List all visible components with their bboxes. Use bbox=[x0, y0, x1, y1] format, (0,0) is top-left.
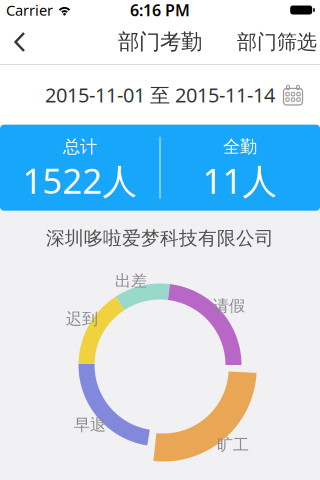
button[interactable]: 部门筛选 bbox=[237, 20, 320, 64]
staticText: 部门筛选 bbox=[237, 30, 317, 54]
staticText: 全勤 bbox=[223, 136, 257, 157]
staticText: 部门考勤 bbox=[118, 29, 202, 55]
staticText: 2015-11-01 至 2015-11-14 bbox=[45, 81, 275, 108]
button[interactable]: Back bbox=[0, 20, 40, 64]
staticText: 早退 bbox=[74, 415, 106, 435]
staticText: 总计 bbox=[63, 136, 97, 157]
staticText: 请假 bbox=[213, 296, 245, 316]
staticText: Carrier bbox=[6, 0, 53, 20]
staticText: 旷工 bbox=[217, 435, 249, 455]
staticText: 6:16 PM bbox=[130, 0, 190, 21]
staticText: 1522人 bbox=[22, 157, 137, 203]
button[interactable]: 2015-11-01 至 2015-11-14 bbox=[0, 65, 320, 125]
staticText: 出差 bbox=[115, 271, 147, 291]
staticText: 11人 bbox=[202, 157, 277, 203]
staticText: 迟到 bbox=[66, 309, 98, 329]
staticText: 深圳哆啦爱梦科技有限公司 bbox=[46, 227, 274, 250]
